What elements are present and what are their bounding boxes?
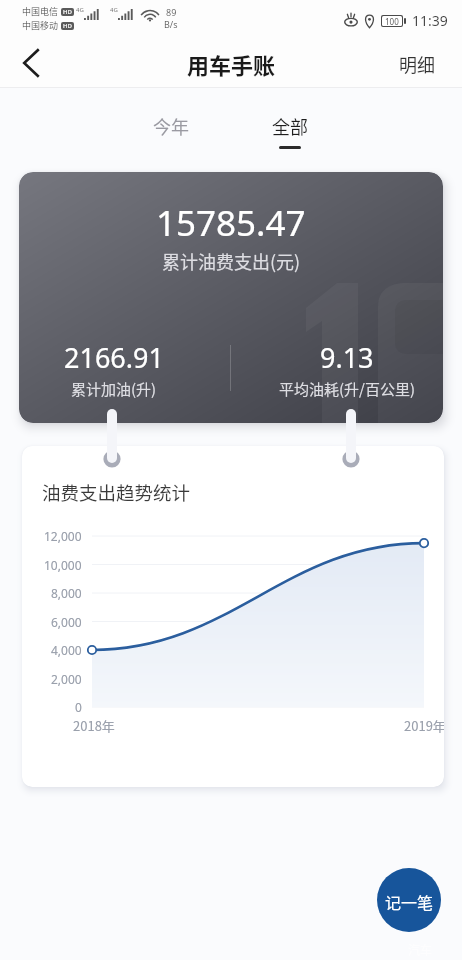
staticText: 2019年 bbox=[404, 716, 444, 735]
button[interactable]: Back bbox=[8, 40, 54, 86]
staticText: 6,000 bbox=[51, 614, 82, 630]
staticText: 0 bbox=[75, 699, 82, 715]
staticText: 10,000 bbox=[44, 557, 82, 573]
staticText: 中国电信 bbox=[22, 5, 59, 18]
staticText: 2,000 bbox=[51, 671, 82, 687]
staticText: 4G bbox=[110, 6, 118, 14]
staticText: 4,000 bbox=[51, 642, 82, 658]
staticText: 4G bbox=[76, 6, 84, 14]
staticText: 今年 bbox=[153, 113, 189, 139]
staticText: 用车手账 bbox=[187, 48, 276, 80]
staticText: 油费支出趋势统计 bbox=[42, 479, 191, 506]
staticText: HD bbox=[63, 22, 72, 30]
staticText: 记一笔 bbox=[385, 890, 434, 913]
staticText: 11:39 bbox=[412, 11, 448, 30]
staticText: 平均油耗(升/百公里) bbox=[279, 378, 416, 400]
staticText: 中国移动 bbox=[22, 19, 59, 32]
button[interactable]: 明细 bbox=[390, 42, 444, 86]
button[interactable]: 全部 bbox=[260, 104, 320, 148]
staticText: 8,000 bbox=[51, 585, 82, 601]
staticText: 15785.47 bbox=[156, 199, 306, 247]
staticText: 累计加油(升) bbox=[71, 378, 157, 400]
staticText: B/s bbox=[164, 18, 178, 30]
staticText: 9.13 bbox=[320, 339, 374, 376]
staticText: 2018年 bbox=[73, 716, 115, 735]
staticText: 12,000 bbox=[44, 528, 82, 544]
button[interactable]: 今年 bbox=[141, 104, 201, 148]
staticText: 累计油费支出(元) bbox=[162, 248, 301, 274]
staticText: 明细 bbox=[399, 51, 435, 77]
staticText: HD bbox=[63, 8, 72, 16]
staticText: 2166.91 bbox=[64, 339, 164, 376]
staticText: 89 bbox=[166, 6, 177, 18]
button[interactable]: 记一笔 bbox=[377, 868, 441, 932]
staticText: 全部 bbox=[272, 113, 308, 139]
staticText: 100 bbox=[385, 16, 399, 26]
